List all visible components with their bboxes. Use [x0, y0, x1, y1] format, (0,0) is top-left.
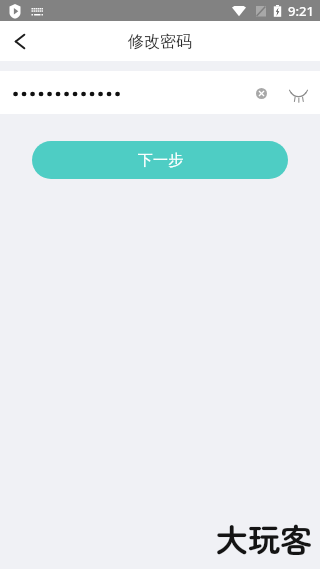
button[interactable]: Clear	[246, 78, 277, 109]
staticText: 修改密码	[128, 32, 192, 52]
staticText: 下一步	[138, 151, 183, 170]
staticText: 大玩客	[216, 515, 313, 561]
staticText: 9:21	[288, 2, 314, 20]
button[interactable]: Show password	[282, 78, 315, 111]
button[interactable]: Back	[0, 21, 40, 61]
button[interactable]: 下一步	[32, 141, 288, 179]
